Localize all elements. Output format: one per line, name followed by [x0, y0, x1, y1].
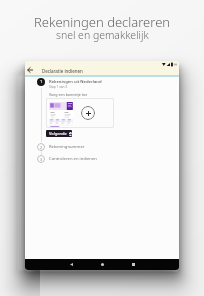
staticText: Volgende — [49, 131, 67, 136]
staticText: Rekeningen uit Nederland — [49, 79, 102, 85]
staticText: Rekeningnummer — [49, 144, 85, 150]
button[interactable]: Add receipt — [81, 106, 95, 120]
staticText: Rekeningen declareren — [34, 13, 171, 31]
staticText: Controleren en indienen — [49, 156, 97, 162]
staticText: Voeg een bonnetje toe — [49, 92, 88, 97]
button[interactable]: Home — [97, 259, 108, 270]
staticText: Declaratie indienen — [42, 68, 83, 74]
staticText: 2 — [40, 145, 43, 150]
staticText: 3 — [40, 157, 43, 162]
button[interactable]: Back — [66, 259, 77, 270]
staticText: snel en gemakkelijk — [56, 28, 149, 42]
button[interactable]: 2 — [37, 143, 85, 151]
button[interactable]: Volgende — [46, 130, 72, 137]
button[interactable]: Recent apps — [128, 259, 139, 270]
button[interactable]: Back — [25, 65, 35, 75]
button[interactable]: 3 — [37, 155, 97, 163]
staticText: Stap 1 van 3 — [49, 85, 68, 89]
staticText: 1 — [40, 79, 43, 85]
